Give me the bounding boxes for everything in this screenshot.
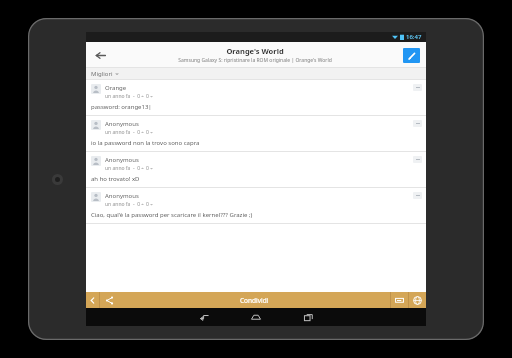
button[interactable]: Share [100, 292, 118, 308]
staticText: 0 [146, 93, 149, 100]
button[interactable]: Back [178, 308, 230, 326]
staticText: 0 [146, 129, 149, 136]
staticText: 16:47 [406, 33, 422, 41]
staticText: Condividi [240, 296, 269, 305]
staticText: un anno fa - 0 [105, 165, 140, 172]
staticText: un anno fa - 0 [105, 201, 140, 208]
button[interactable]: Collapse [413, 192, 422, 199]
staticText: un anno fa - 0 [105, 93, 140, 100]
button[interactable]: Orange [86, 80, 426, 116]
button[interactable]: Anonymous [86, 116, 426, 152]
button[interactable]: Anonymous [86, 188, 426, 224]
staticText: Anonymous [105, 192, 139, 200]
staticText: io la password non la trovo sono capra [91, 139, 200, 147]
button[interactable]: Back [86, 292, 99, 308]
button[interactable]: Collapse [413, 156, 422, 163]
staticText: 0 [146, 165, 149, 172]
staticText: Orange's World [226, 46, 284, 56]
button[interactable]: Migliori [86, 68, 426, 80]
button[interactable]: Collapse [413, 120, 422, 127]
button[interactable]: Open in browser [409, 292, 426, 308]
button[interactable]: Back [86, 42, 114, 68]
staticText: un anno fa - 0 [105, 129, 140, 136]
staticText: Samsung Galaxy S: ripristinare la ROM or… [178, 57, 332, 64]
staticText: Anonymous [105, 156, 139, 164]
button[interactable]: Condividi [118, 292, 390, 308]
staticText: 0 [146, 201, 149, 208]
button[interactable]: Home [230, 308, 282, 326]
staticText: Ciao, qual'è la password per scaricare i… [91, 211, 253, 219]
button[interactable]: Anonymous [86, 152, 426, 188]
button[interactable]: Recents [282, 308, 334, 326]
button[interactable]: Comments [391, 292, 408, 308]
staticText: Anonymous [105, 120, 139, 128]
staticText: Migliori [91, 70, 113, 78]
button[interactable]: Collapse [413, 84, 422, 91]
staticText: ah ho trovato! xD [91, 175, 140, 183]
staticText: Orange [105, 84, 127, 92]
staticText: password: orange13| [91, 103, 152, 111]
button[interactable]: Edit [396, 42, 426, 68]
